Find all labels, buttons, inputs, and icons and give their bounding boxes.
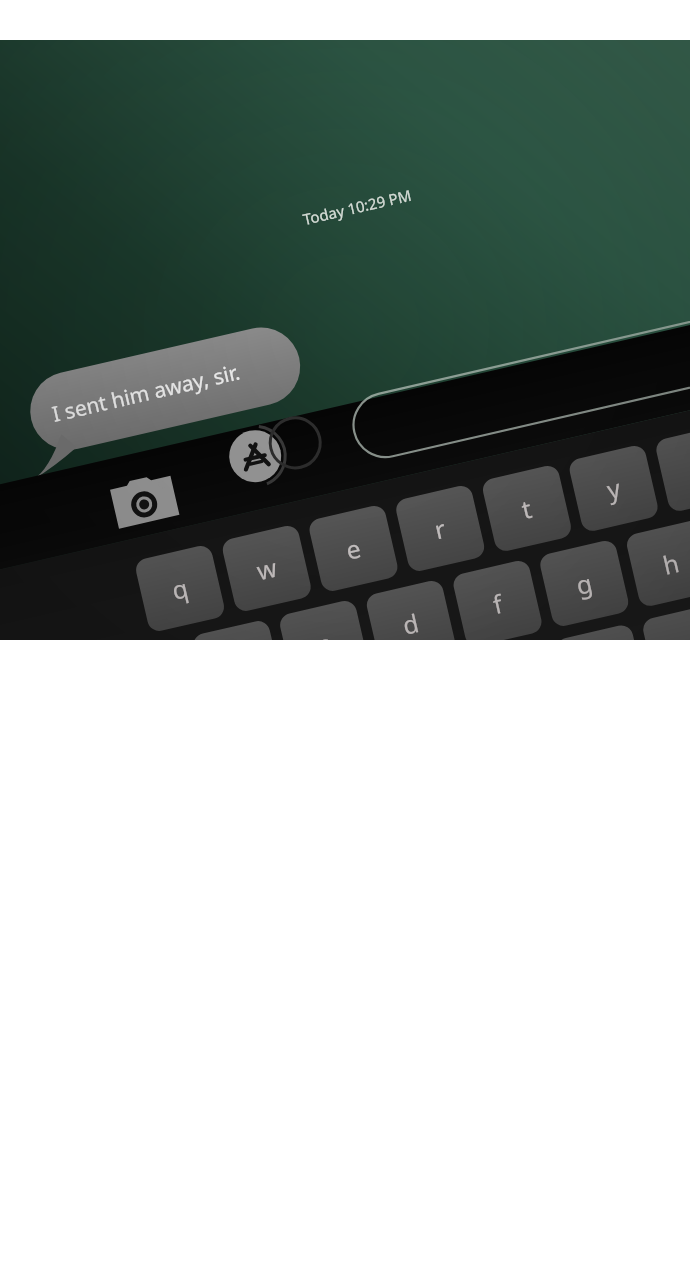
button[interactable]: Messages conversation screenshot — [0, 0, 690, 1280]
